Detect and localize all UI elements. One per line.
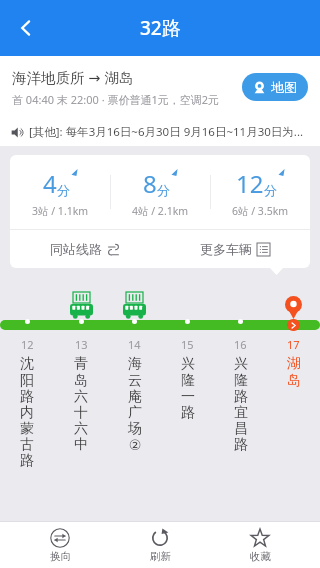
- staticText: 兴 隆 路 宜 昌 路: [234, 355, 248, 453]
- staticText: 4站 / 2.1km: [132, 204, 189, 218]
- button[interactable]: Back: [4, 6, 48, 50]
- staticText: 兴 隆 一 路: [181, 355, 195, 421]
- staticText: 更多车辆: [200, 241, 252, 257]
- staticText: 分: [264, 182, 277, 198]
- staticText: 分: [57, 182, 70, 198]
- button[interactable]: 14: [108, 337, 161, 453]
- staticText: 16: [234, 337, 247, 352]
- staticText: 3站 / 1.1km: [32, 204, 89, 218]
- staticText: 32路: [140, 15, 181, 41]
- staticText: 地图: [271, 79, 297, 95]
- staticText: 收藏: [250, 550, 271, 563]
- staticText: 分: [157, 182, 170, 198]
- staticText: [其他]: 每年3月16日~6月30日 9月16日~11月30日为...: [29, 124, 304, 140]
- staticText: 首 04:40 末 22:00 · 票价普通1元，空调2元: [12, 92, 220, 107]
- button[interactable]: 17: [267, 337, 320, 389]
- staticText: 海 云 庵 广 场 ②: [128, 355, 142, 453]
- button[interactable]: 16: [214, 337, 267, 453]
- staticText: 14: [128, 337, 141, 352]
- button[interactable]: 13: [54, 337, 108, 453]
- staticText: 13: [75, 337, 88, 352]
- button[interactable]: 收藏: [220, 525, 300, 566]
- staticText: 湖 岛: [287, 355, 301, 389]
- staticText: 刷新: [150, 550, 171, 563]
- staticText: 青 岛 六 十 六 中: [74, 355, 88, 453]
- button[interactable]: 地图: [242, 73, 308, 101]
- staticText: 6站 / 3.5km: [232, 204, 289, 218]
- button[interactable]: [其他]: 每年3月16日~6月30日 9月16日~11月30日为...: [0, 118, 320, 146]
- staticText: 12: [236, 167, 264, 200]
- button[interactable]: 同站线路: [44, 235, 126, 263]
- staticText: 17: [287, 337, 300, 352]
- button[interactable]: 15: [161, 337, 214, 421]
- staticText: 沈 阳 路 内 蒙 古 路: [20, 355, 34, 469]
- button[interactable]: 更多车辆: [194, 235, 276, 263]
- staticText: 15: [181, 337, 194, 352]
- staticText: 海洋地质所 → 湖岛: [12, 67, 134, 87]
- staticText: 8: [143, 167, 157, 200]
- staticText: 换向: [50, 550, 71, 563]
- staticText: 同站线路: [50, 241, 102, 257]
- staticText: 12: [21, 337, 34, 352]
- button[interactable]: 换向: [20, 525, 100, 566]
- button[interactable]: 刷新: [120, 525, 200, 566]
- button[interactable]: 12: [0, 337, 54, 469]
- staticText: 4: [43, 167, 57, 200]
